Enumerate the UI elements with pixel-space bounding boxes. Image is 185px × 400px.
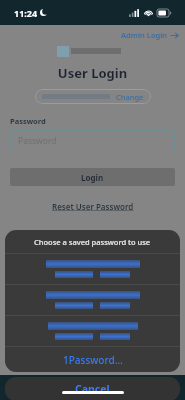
staticText: Reset User Password [52,201,134,212]
staticText: Cancel [75,382,110,396]
staticText: 1Password… [63,353,123,367]
button[interactable]: Login [10,168,175,186]
button[interactable]: Saved password 1 [5,254,180,284]
staticText: Admin Login [121,30,168,40]
staticText: Login [81,172,104,183]
staticText: Password [18,135,57,147]
button[interactable]: Password [10,130,175,152]
button[interactable]: 1Password… [5,347,180,372]
button[interactable]: Reset User Password [52,201,134,212]
button[interactable]: Saved password 2 [5,285,180,315]
staticText: 11:24 [14,7,38,19]
button[interactable]: Change [116,92,144,102]
staticText: Password [10,116,46,126]
staticText: Choose a saved password to use [34,237,151,247]
button[interactable]: Saved password 3 [5,316,180,346]
staticText: User Login [0,64,185,82]
button[interactable]: Cancel [5,377,180,400]
button[interactable]: Admin Login [0,25,178,45]
staticText: Change [116,92,144,102]
